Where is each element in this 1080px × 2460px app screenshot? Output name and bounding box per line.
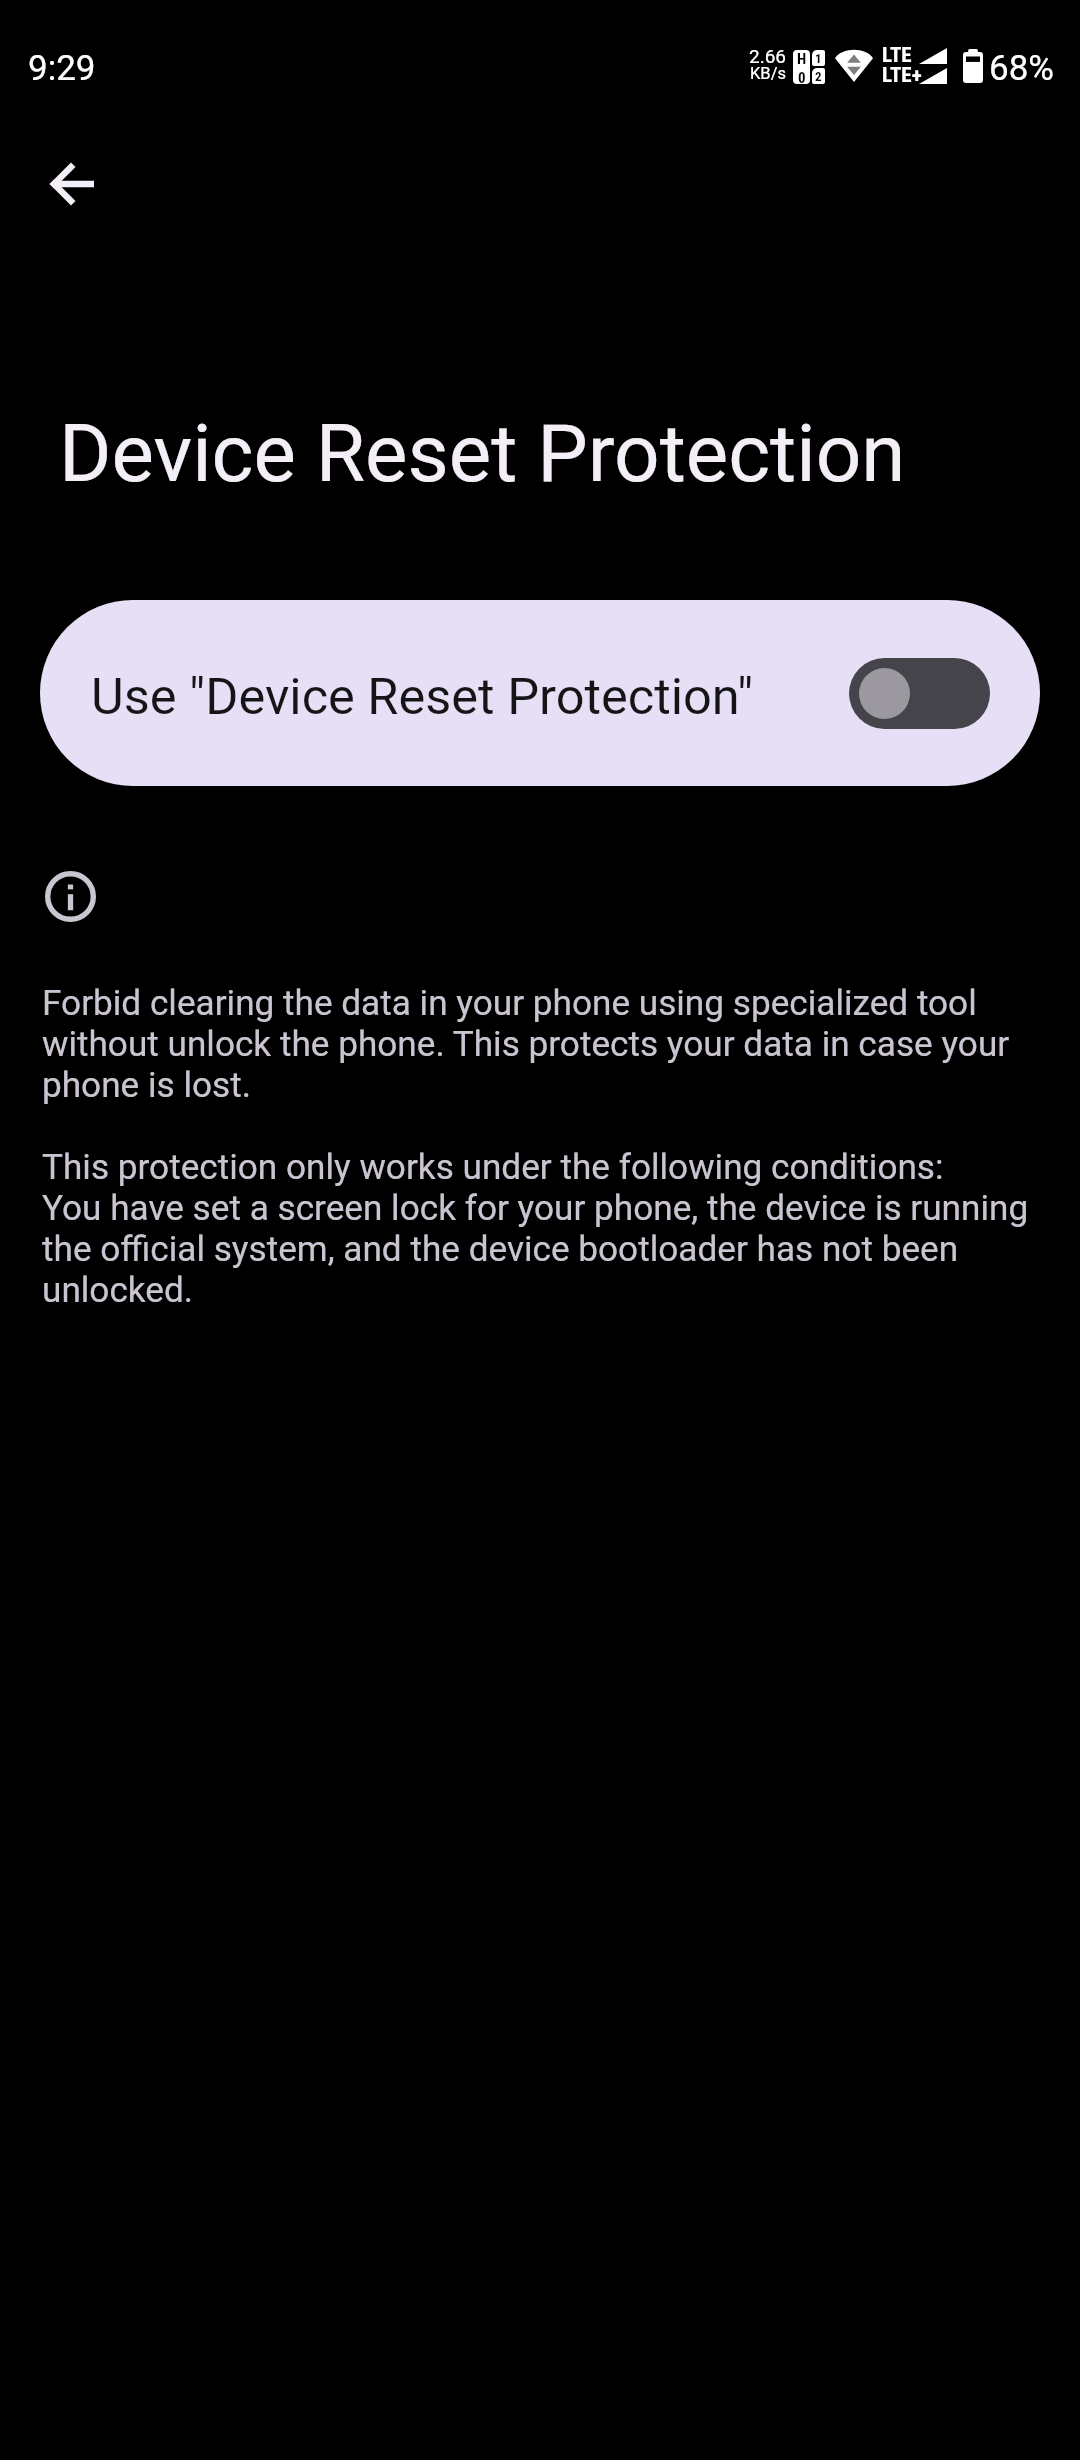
staticText: LTE+ (882, 63, 922, 88)
button[interactable]: Navigate up (26, 136, 122, 232)
staticText: Use "Device Reset Protection" (91, 667, 754, 726)
staticText: Device Reset Protection (59, 407, 906, 500)
staticText: Forbid clearing the data in your phone u… (42, 983, 1042, 1106)
staticText: 68% (989, 48, 1054, 88)
staticText: 0 (798, 69, 806, 84)
staticText: 2 (815, 69, 822, 84)
staticText: 9:29 (28, 48, 96, 88)
staticText: 2.66 (749, 47, 787, 67)
button[interactable]: Use "Device Reset Protection", off (849, 658, 990, 729)
staticText: H (797, 50, 807, 68)
staticText: KB/s (750, 66, 786, 83)
staticText: 1 (815, 51, 822, 66)
staticText: This protection only works under the fol… (42, 1147, 1042, 1311)
button[interactable]: Use "Device Reset Protection" (40, 600, 1040, 786)
staticText: LTE (882, 43, 912, 68)
